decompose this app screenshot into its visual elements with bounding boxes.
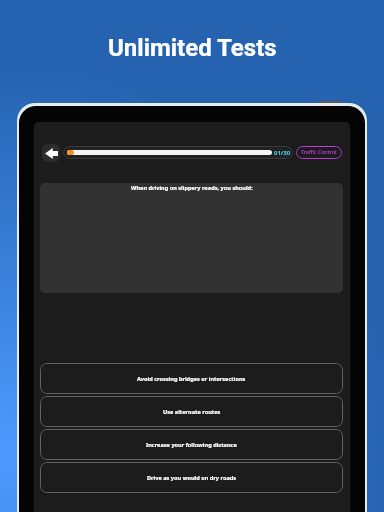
button[interactable]: Traffic Control [296,146,342,159]
staticText: When driving on slippery roads, you shou… [131,184,253,192]
staticText: Use alternate routes [163,408,221,416]
staticText: Traffic Control [301,149,337,156]
button[interactable]: Back [42,144,60,162]
button[interactable]: Drive as you would on dry roads [40,462,343,493]
button[interactable]: Avoid crossing bridges or intersections [40,363,343,394]
staticText: Drive as you would on dry roads [147,474,237,482]
staticText: Unlimited Tests [108,34,277,62]
staticText: Avoid crossing bridges or intersections [137,375,246,383]
button[interactable]: Increase your following distance [40,429,343,460]
staticText: 01/30 [274,149,291,157]
staticText: Increase your following distance [146,441,237,449]
button[interactable]: Use alternate routes [40,396,343,427]
